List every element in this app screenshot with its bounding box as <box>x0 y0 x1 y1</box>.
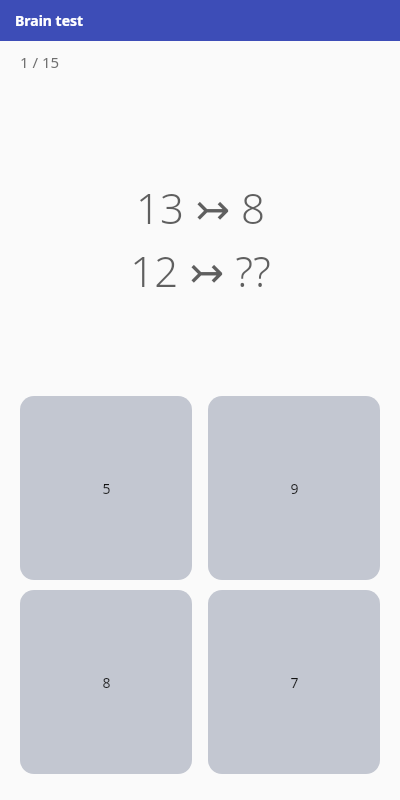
button[interactable]: 5 <box>20 396 192 580</box>
staticText: 13 ↣ 8 <box>136 179 265 236</box>
staticText: 1 / 15 <box>20 52 60 72</box>
staticText: 8 <box>102 673 111 692</box>
button[interactable]: 8 <box>20 590 192 774</box>
button[interactable]: 7 <box>208 590 380 774</box>
staticText: 9 <box>290 479 299 498</box>
staticText: Brain test <box>15 11 84 30</box>
staticText: 5 <box>102 479 111 498</box>
staticText: 7 <box>290 673 299 692</box>
button[interactable]: 9 <box>208 396 380 580</box>
staticText: 12 ↣ ?? <box>130 242 271 299</box>
